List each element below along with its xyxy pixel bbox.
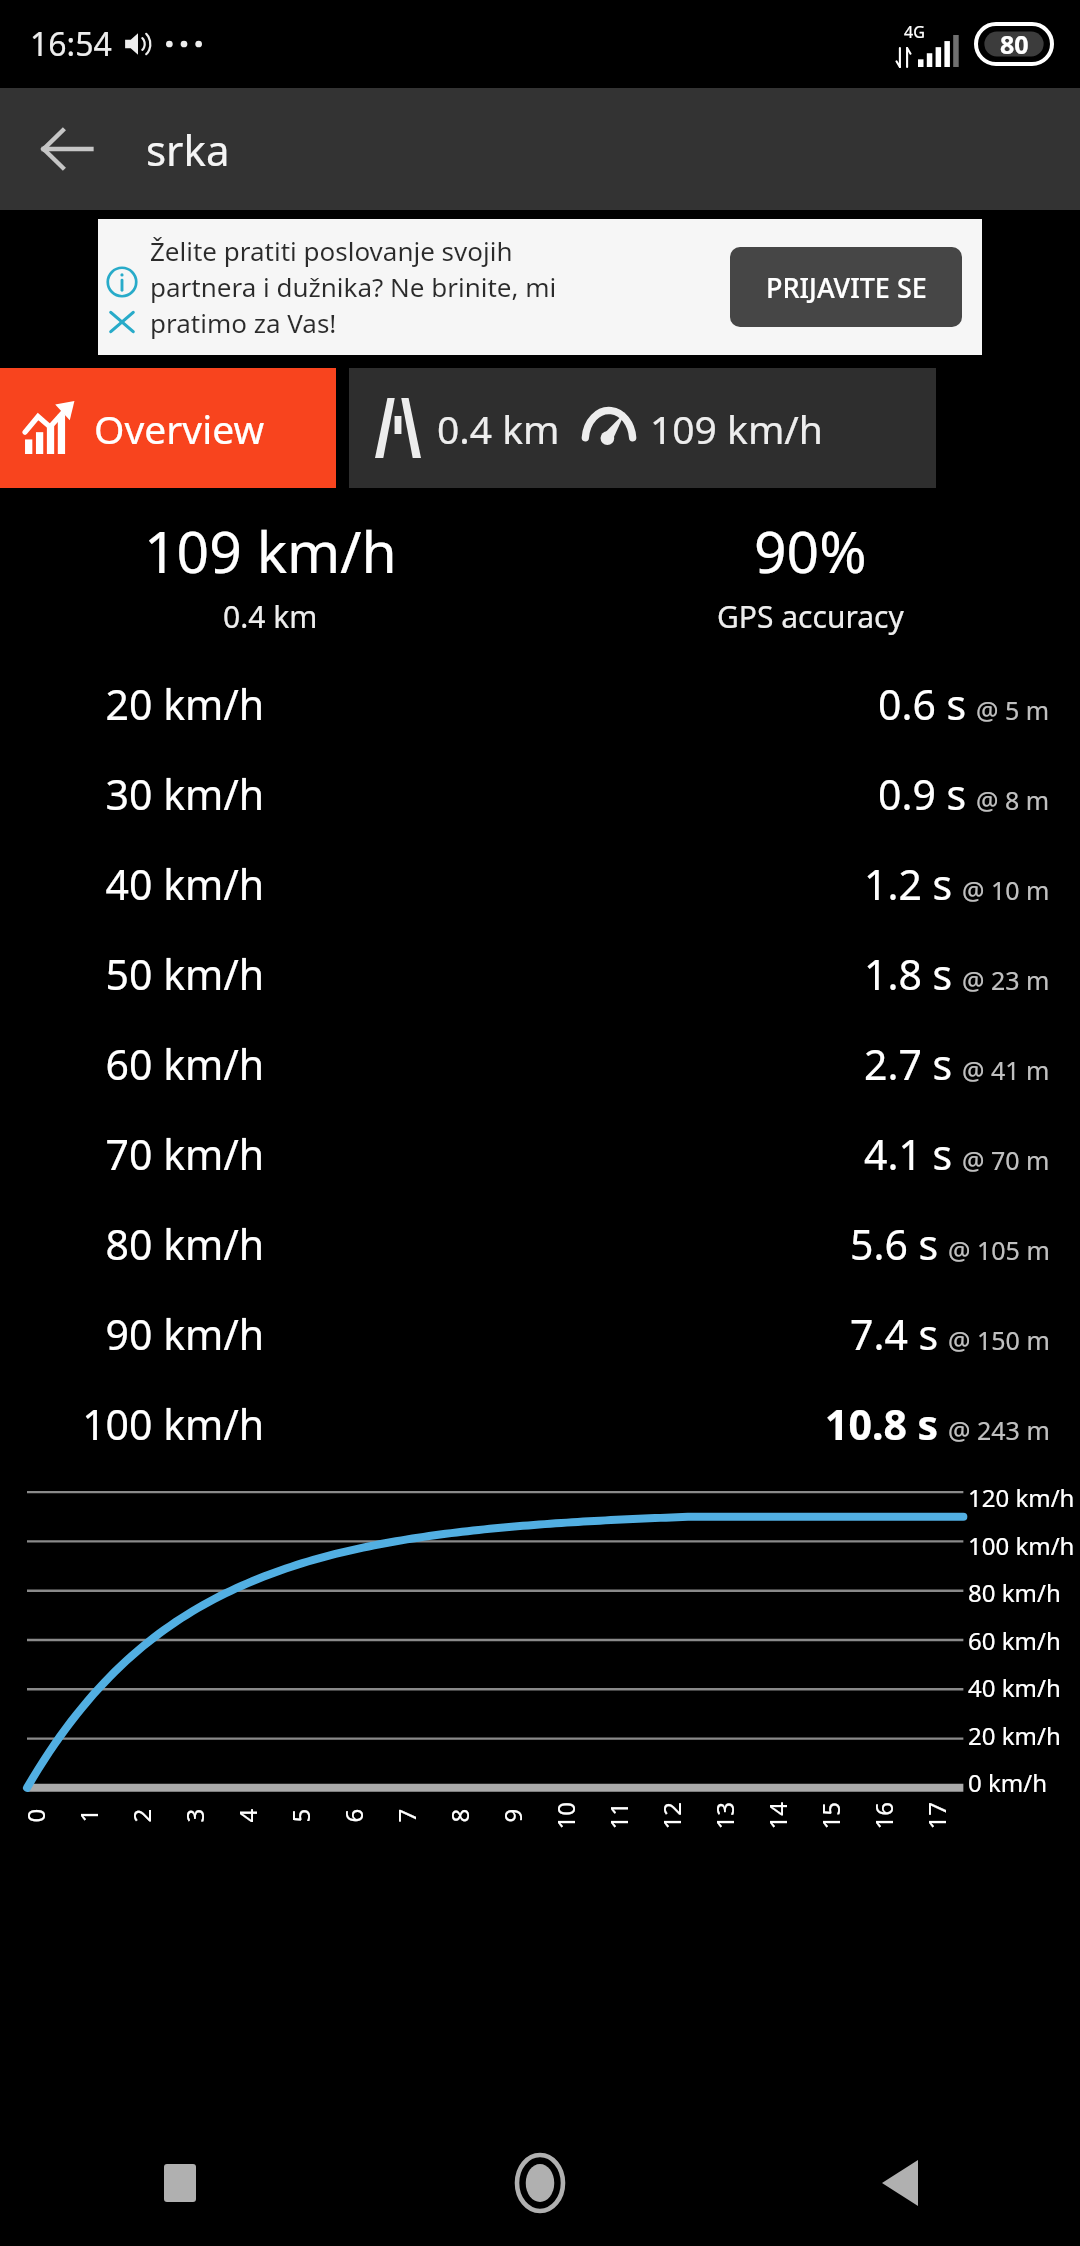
staticText: 5.6 s (850, 1216, 939, 1272)
staticText: 100 km/h (82, 1396, 264, 1452)
staticText: 10.8 s (825, 1396, 939, 1452)
button[interactable]: 30 km/h (0, 749, 1080, 839)
button[interactable]: Ad information (98, 219, 982, 355)
staticText: @ 8 m (976, 783, 1050, 817)
staticText: 10 (548, 1801, 581, 1829)
other: Maximum speed (582, 405, 636, 451)
staticText: 80 km/h (105, 1216, 264, 1272)
button[interactable]: Ad information (106, 266, 138, 298)
button[interactable]: 60 km/h (0, 1019, 1080, 1109)
staticText: 80 (1000, 27, 1029, 61)
staticText: 0 km/h (968, 1766, 1047, 1799)
staticText: 15 (813, 1801, 846, 1829)
staticText: 40 km/h (968, 1671, 1061, 1704)
staticText: 16:54 (30, 22, 112, 66)
staticText: Overview (94, 402, 265, 455)
staticText: 70 km/h (105, 1126, 264, 1182)
staticText: @ 70 m (962, 1143, 1050, 1177)
button[interactable]: Close ad (106, 306, 138, 338)
staticText: 6 (336, 1808, 369, 1822)
button[interactable]: 20 km/h (0, 659, 1080, 749)
staticText: 0 (18, 1808, 51, 1822)
staticText: srka (146, 121, 230, 178)
staticText: 0.4 km (223, 596, 318, 637)
staticText: 2.7 s (864, 1036, 953, 1092)
staticText: 40 km/h (105, 856, 264, 912)
staticText: 7.4 s (850, 1306, 939, 1362)
staticText: Želite pratiti poslovanje svojih partner… (150, 233, 724, 341)
staticText: 109 km/h (650, 402, 823, 455)
staticText: 80 km/h (968, 1576, 1061, 1609)
staticText: 20 km/h (105, 676, 264, 732)
staticText: 1.8 s (864, 946, 953, 1002)
staticText: 0.9 s (878, 766, 967, 822)
staticText: 4G (904, 21, 925, 43)
button[interactable]: Navigate up (24, 106, 110, 192)
staticText: 1 (71, 1808, 104, 1822)
staticText: PRIJAVITE SE (766, 269, 927, 306)
button[interactable]: 100 km/h (0, 1379, 1080, 1469)
staticText: 109 km/h (144, 512, 397, 590)
staticText: GPS accuracy (717, 596, 904, 637)
staticText: @ 10 m (962, 873, 1050, 907)
staticText: @ 150 m (948, 1323, 1050, 1357)
button[interactable]: 40 km/h (0, 839, 1080, 929)
staticText: @ 41 m (962, 1053, 1050, 1087)
button[interactable]: Overview (0, 368, 336, 488)
staticText: 4 (230, 1808, 263, 1822)
staticText: 30 km/h (105, 766, 264, 822)
staticText: @ 23 m (962, 963, 1050, 997)
staticText: 8 (442, 1808, 475, 1822)
staticText: 17 (919, 1801, 952, 1829)
staticText: 0.6 s (878, 676, 967, 732)
staticText: 11 (601, 1801, 634, 1829)
staticText: 90 km/h (105, 1306, 264, 1362)
button[interactable]: 90 km/h (0, 1289, 1080, 1379)
staticText: 9 (495, 1808, 528, 1822)
staticText: 4.1 s (864, 1126, 953, 1182)
staticText: 2 (124, 1808, 157, 1822)
button[interactable]: Recent apps (0, 2120, 360, 2246)
button[interactable]: Home (360, 2120, 720, 2246)
button[interactable]: PRIJAVITE SE (730, 247, 962, 327)
button[interactable]: Distance (349, 368, 936, 488)
staticText: 13 (707, 1801, 740, 1829)
staticText: 60 km/h (105, 1036, 264, 1092)
staticText: 50 km/h (105, 946, 264, 1002)
staticText: 3 (177, 1808, 210, 1822)
button[interactable]: 70 km/h (0, 1109, 1080, 1199)
button[interactable]: 50 km/h (0, 929, 1080, 1019)
staticText: 60 km/h (968, 1624, 1061, 1657)
staticText: 12 (654, 1801, 687, 1829)
staticText: 14 (760, 1801, 793, 1829)
staticText: 100 km/h (968, 1529, 1075, 1562)
button[interactable]: Back (720, 2120, 1080, 2246)
staticText: 16 (866, 1801, 899, 1829)
staticText: @ 5 m (976, 693, 1050, 727)
staticText: @ 105 m (948, 1233, 1050, 1267)
staticText: 0.4 km (437, 402, 560, 455)
button[interactable]: 80 km/h (0, 1199, 1080, 1289)
staticText: 90% (754, 512, 867, 590)
other: Distance (375, 398, 421, 458)
staticText: 7 (389, 1808, 422, 1822)
staticText: 5 (283, 1808, 316, 1822)
staticText: 20 km/h (968, 1719, 1061, 1752)
staticText: @ 243 m (948, 1413, 1050, 1447)
staticText: 120 km/h (968, 1481, 1075, 1514)
staticText: 1.2 s (864, 856, 953, 912)
